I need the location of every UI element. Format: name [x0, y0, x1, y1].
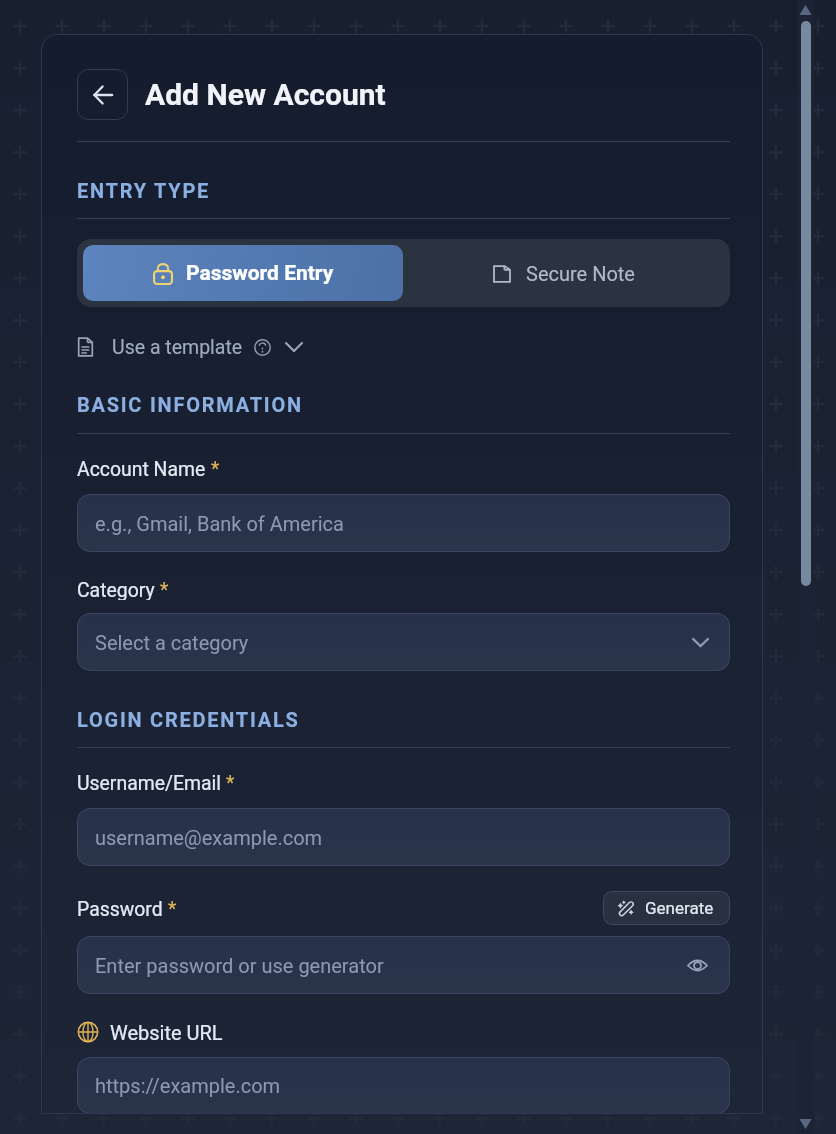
staticText: LOGIN CREDENTIALS — [77, 708, 300, 731]
staticText: * — [168, 898, 177, 919]
button[interactable]: e.g., Gmail, Bank of America — [77, 494, 730, 552]
staticText: * — [226, 772, 235, 793]
button[interactable]: Enter password or use generator — [77, 936, 730, 994]
staticText: * — [211, 458, 220, 479]
button[interactable]: Password Entry — [83, 245, 403, 301]
staticText: Website URL — [110, 1021, 223, 1044]
button[interactable]: Select a category — [77, 613, 730, 671]
button[interactable]: Secure Note — [403, 245, 724, 301]
staticText: Category — [77, 579, 155, 600]
staticText: Select a category — [95, 631, 249, 654]
staticText: Generate — [645, 898, 714, 918]
staticText: username@example.com — [95, 826, 323, 849]
staticText: Add New Account — [145, 77, 386, 112]
staticText: Account Name — [77, 458, 206, 479]
staticText: ENTRY TYPE — [77, 179, 211, 202]
staticText: Password — [77, 898, 163, 919]
button[interactable]: https://example.com — [77, 1057, 730, 1114]
button[interactable]: Back — [77, 69, 128, 120]
button[interactable]: Generate — [603, 891, 730, 925]
staticText: e.g., Gmail, Bank of America — [95, 512, 344, 535]
staticText: * — [160, 579, 169, 600]
button[interactable]: Use a template — [77, 336, 302, 358]
staticText: Secure Note — [526, 262, 635, 285]
staticText: BASIC INFORMATION — [77, 393, 303, 416]
staticText: Enter password or use generator — [95, 954, 384, 977]
staticText: https://example.com — [95, 1074, 281, 1097]
staticText: Username/Email — [77, 772, 221, 793]
staticText: Password Entry — [186, 261, 334, 286]
staticText: Use a template — [112, 336, 243, 358]
button[interactable]: username@example.com — [77, 808, 730, 866]
